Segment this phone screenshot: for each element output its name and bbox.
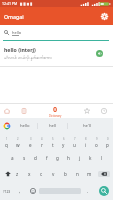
staticText: l bbox=[101, 155, 103, 161]
button[interactable]: hello (interj) bbox=[0, 41, 113, 66]
staticText: c bbox=[40, 171, 43, 177]
button[interactable]: m bbox=[83, 166, 95, 182]
button[interactable]: Shift bbox=[0, 166, 12, 182]
button[interactable]: g bbox=[52, 150, 63, 166]
staticText: y bbox=[62, 142, 65, 148]
button[interactable]: 3 bbox=[24, 134, 36, 150]
staticText: Omagai bbox=[4, 13, 24, 20]
button[interactable]: Emoji bbox=[27, 182, 38, 200]
staticText: 9 bbox=[96, 137, 98, 141]
staticText: g bbox=[56, 155, 59, 161]
button[interactable]: 4 bbox=[36, 134, 47, 150]
button[interactable]: a bbox=[6, 150, 18, 166]
staticText: 7 bbox=[74, 137, 76, 141]
button[interactable]: 2 bbox=[12, 134, 24, 150]
button[interactable]: s bbox=[18, 150, 30, 166]
button[interactable]: Backspace bbox=[98, 171, 110, 177]
staticText: a bbox=[11, 155, 14, 161]
staticText: e bbox=[29, 142, 32, 148]
button[interactable]: hello bbox=[0, 25, 113, 40]
button[interactable]: hello bbox=[13, 118, 37, 134]
staticText: q bbox=[5, 142, 8, 148]
staticText: 4 bbox=[41, 137, 43, 141]
staticText: j bbox=[79, 155, 81, 161]
staticText: d bbox=[34, 155, 37, 161]
button[interactable]: k bbox=[85, 150, 96, 166]
button[interactable]: Favourites bbox=[78, 104, 95, 118]
staticText: hell bbox=[49, 123, 57, 129]
button[interactable]: ?123 bbox=[0, 182, 13, 200]
button[interactable]: 9 bbox=[91, 134, 102, 150]
staticText: 12:41 PM bbox=[2, 1, 18, 6]
button[interactable]: Settings bbox=[97, 9, 111, 23]
button[interactable]: h bbox=[63, 150, 74, 166]
staticText: he'll bbox=[83, 123, 92, 129]
staticText: s bbox=[23, 155, 26, 161]
staticText: r bbox=[41, 142, 43, 148]
staticText: hello bbox=[20, 123, 30, 129]
button[interactable]: Google bbox=[0, 118, 13, 134]
button[interactable]: j bbox=[74, 150, 85, 166]
staticText: t bbox=[52, 142, 54, 148]
staticText: p bbox=[106, 142, 109, 148]
staticText: 0 bbox=[107, 137, 109, 141]
staticText: . bbox=[87, 188, 89, 194]
button[interactable]: he'll bbox=[68, 118, 107, 134]
staticText: Dictionary bbox=[49, 114, 62, 118]
button[interactable]: n bbox=[71, 166, 83, 182]
staticText: n bbox=[76, 171, 79, 177]
staticText: hello bbox=[12, 30, 22, 35]
button[interactable]: . bbox=[81, 182, 94, 200]
staticText: 0 bbox=[53, 104, 58, 114]
button[interactable]: Play pronunciation bbox=[96, 50, 103, 57]
button[interactable]: x bbox=[23, 166, 35, 182]
button[interactable]: Search bbox=[99, 186, 109, 196]
staticText: h bbox=[67, 155, 70, 161]
button[interactable]: Home bbox=[0, 104, 14, 118]
staticText: b bbox=[64, 171, 67, 177]
staticText: 6 bbox=[63, 137, 65, 141]
button[interactable]: Books bbox=[14, 104, 33, 118]
staticText: 1 bbox=[6, 137, 8, 141]
button[interactable]: z bbox=[12, 166, 23, 182]
staticText: 5 bbox=[52, 137, 54, 141]
button[interactable]: b bbox=[59, 166, 71, 182]
staticText: w bbox=[16, 142, 20, 148]
staticText: i bbox=[85, 142, 87, 148]
button[interactable]: d bbox=[30, 150, 41, 166]
button[interactable]: 6 bbox=[58, 134, 69, 150]
button[interactable]: l bbox=[96, 150, 107, 166]
button[interactable]: hell bbox=[38, 118, 67, 134]
button[interactable]: 0 bbox=[33, 104, 78, 118]
button[interactable]: , bbox=[13, 182, 27, 200]
staticText: u bbox=[73, 142, 76, 148]
staticText: x bbox=[28, 171, 31, 177]
staticText: ?123 bbox=[3, 189, 11, 194]
staticText: f bbox=[46, 155, 48, 161]
staticText: m bbox=[87, 171, 92, 177]
button[interactable]: 5 bbox=[47, 134, 58, 150]
button[interactable]: 7 bbox=[69, 134, 80, 150]
staticText: hello (interj) bbox=[4, 46, 36, 53]
staticText: 2 bbox=[17, 137, 19, 141]
staticText: 8 bbox=[85, 137, 87, 141]
staticText: , bbox=[19, 188, 21, 194]
staticText: z bbox=[16, 171, 19, 177]
staticText: k bbox=[89, 155, 92, 161]
button[interactable]: f bbox=[41, 150, 52, 166]
staticText: o bbox=[95, 142, 98, 148]
staticText: 3 bbox=[30, 137, 32, 141]
button[interactable]: v bbox=[47, 166, 59, 182]
staticText: v bbox=[52, 171, 55, 177]
button[interactable]: History bbox=[95, 104, 113, 118]
button[interactable]: c bbox=[35, 166, 47, 182]
button[interactable]: 0 bbox=[102, 134, 113, 150]
button[interactable]: 1 bbox=[0, 134, 12, 150]
staticText: မင်္ဂလာပါ၊ ဟယ်လို၊ နှုတ်ဆက်စကား bbox=[4, 55, 52, 61]
button[interactable]: 8 bbox=[80, 134, 91, 150]
